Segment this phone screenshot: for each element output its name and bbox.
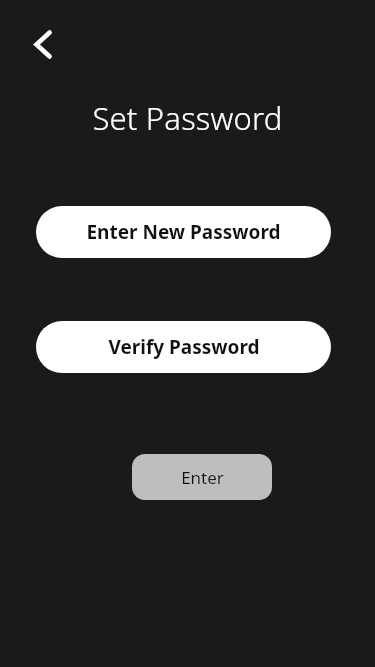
button[interactable]: Verify Password [36,321,331,373]
button[interactable]: Back [20,20,68,68]
button[interactable]: Enter New Password [36,206,331,258]
staticText: Set Password [92,97,283,139]
button[interactable]: Enter [132,454,272,500]
staticText: Enter New Password [86,219,281,245]
staticText: Verify Password [108,334,260,360]
staticText: Enter [181,466,224,489]
